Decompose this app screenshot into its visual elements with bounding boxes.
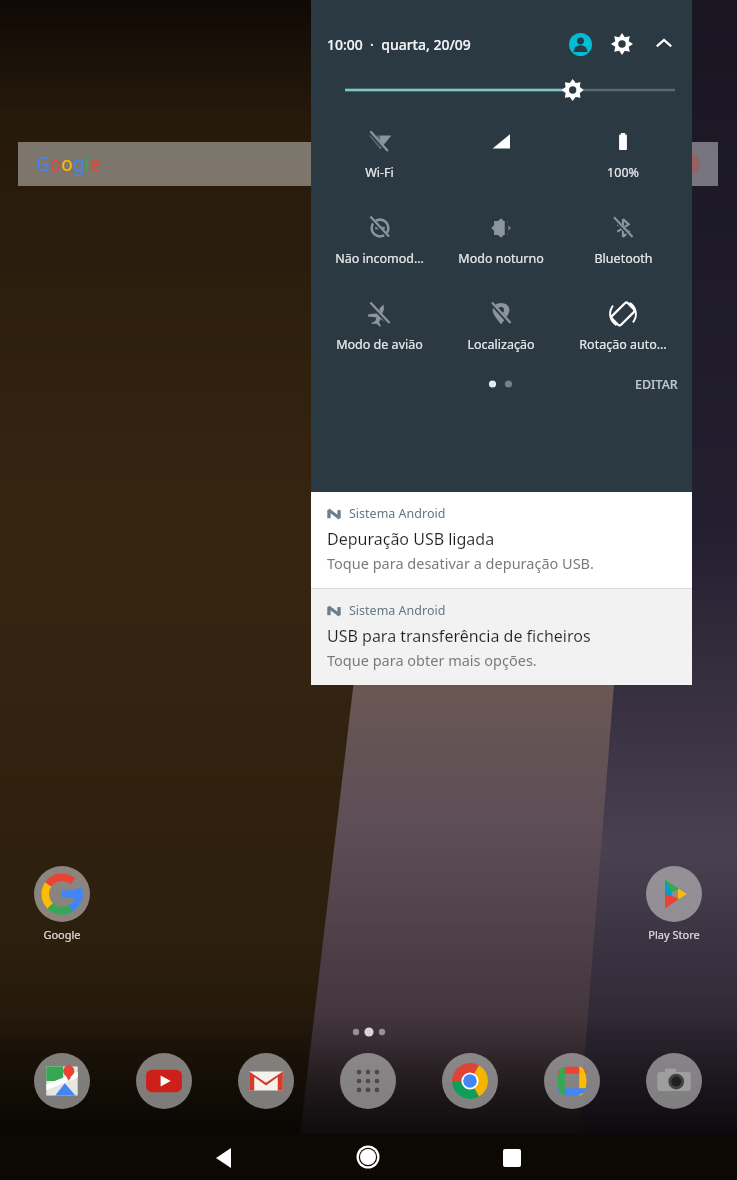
staticText: Sistema Android: [349, 602, 446, 619]
button[interactable]: Play Store: [646, 866, 702, 942]
button[interactable]: YouTube: [136, 1053, 192, 1109]
button[interactable]: Photos: [544, 1053, 600, 1109]
staticText: 100%: [607, 164, 639, 181]
button[interactable]: 100%: [562, 125, 684, 183]
button[interactable]: Sistema Android: [311, 589, 692, 685]
button[interactable]: Wi-Fi: [319, 125, 440, 183]
other: Voice search: [676, 151, 702, 177]
button[interactable]: User: [564, 28, 596, 60]
button[interactable]: Bluetooth: [562, 211, 684, 269]
button[interactable]: Sistema Android: [311, 492, 692, 588]
button[interactable]: Maps: [34, 1053, 90, 1109]
button[interactable]: Home: [344, 1134, 392, 1180]
staticText: Sistema Android: [349, 505, 446, 522]
staticText: 10:00 · quarta, 20/09: [327, 35, 471, 54]
button[interactable]: Settings: [606, 28, 638, 60]
staticText: Wi-Fi: [365, 164, 394, 181]
staticText: Rotação auto…: [579, 336, 667, 353]
staticText: Google: [43, 927, 81, 942]
button[interactable]: Camera: [646, 1053, 702, 1109]
button[interactable]: Google: [18, 142, 718, 186]
button[interactable]: Modo noturno: [440, 211, 562, 269]
staticText: Localização: [467, 336, 535, 353]
button[interactable]: Collapse: [648, 28, 680, 60]
staticText: Toque para obter mais opções.: [327, 650, 537, 670]
button[interactable]: Back: [200, 1134, 248, 1180]
button[interactable]: Chrome: [442, 1053, 498, 1109]
staticText: Modo de avião: [336, 336, 423, 353]
staticText: Modo noturno: [458, 250, 544, 267]
button[interactable]: Localização: [440, 297, 562, 355]
button[interactable]: Modo de avião: [319, 297, 440, 355]
staticText: Play Store: [648, 927, 700, 942]
staticText: Não incomod…: [335, 250, 424, 267]
button[interactable]: Não incomod…: [319, 211, 440, 269]
button[interactable]: Brightness: [311, 77, 692, 103]
staticText: Google: [36, 151, 101, 177]
button[interactable]: Apps: [340, 1053, 396, 1109]
button[interactable]: EDITAR: [635, 376, 678, 393]
button[interactable]: Google: [34, 866, 90, 942]
staticText: Toque para desativar a depuração USB.: [327, 553, 594, 573]
staticText: Depuração USB ligada: [327, 528, 495, 550]
button[interactable]: Rotação auto…: [562, 297, 684, 355]
staticText: USB para transferência de ficheiros: [327, 625, 591, 647]
button[interactable]: Recent apps: [488, 1134, 536, 1180]
button[interactable]: [440, 125, 562, 159]
staticText: Bluetooth: [594, 250, 653, 267]
button[interactable]: Gmail: [238, 1053, 294, 1109]
staticText: EDITAR: [635, 376, 678, 393]
